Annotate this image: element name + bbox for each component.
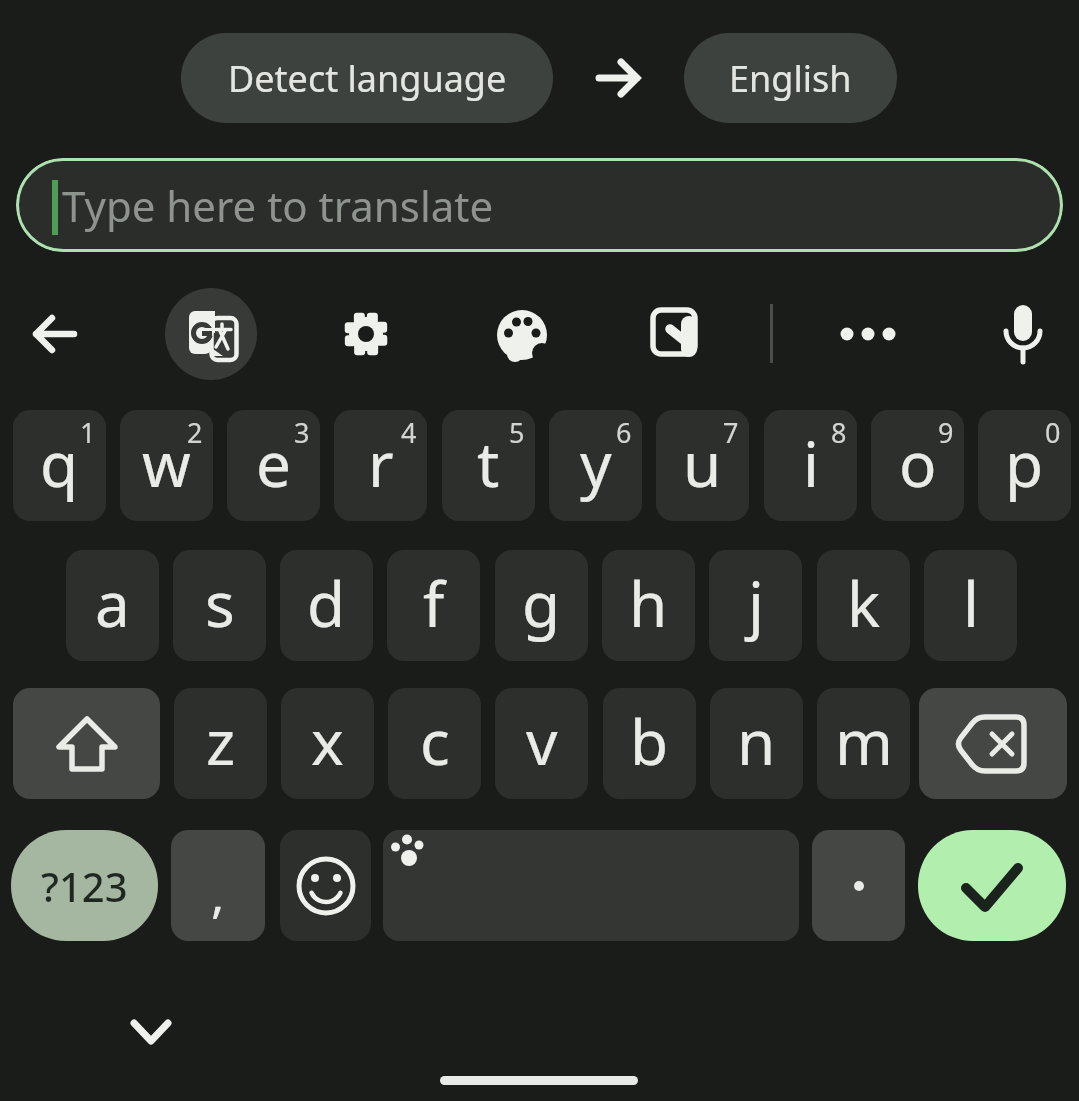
- staticText: Type here to translate: [62, 177, 494, 234]
- button[interactable]: m: [817, 688, 910, 799]
- button[interactable]: ?123: [11, 830, 158, 941]
- button[interactable]: i: [764, 410, 857, 521]
- button[interactable]: [280, 830, 371, 941]
- staticText: y: [580, 421, 612, 505]
- button[interactable]: [836, 321, 900, 347]
- staticText: ,: [211, 860, 225, 928]
- staticText: i: [803, 421, 819, 505]
- button[interactable]: l: [924, 550, 1017, 661]
- button[interactable]: s: [173, 550, 266, 661]
- button[interactable]: [919, 688, 1067, 799]
- staticText: g: [522, 561, 561, 645]
- button[interactable]: [130, 1012, 172, 1054]
- button[interactable]: j: [709, 550, 802, 661]
- staticText: f: [423, 561, 445, 645]
- staticText: o: [899, 421, 937, 505]
- staticText: h: [629, 561, 668, 645]
- button[interactable]: z: [174, 688, 267, 799]
- button[interactable]: [342, 310, 390, 358]
- staticText: w: [142, 421, 191, 505]
- button[interactable]: c: [388, 688, 481, 799]
- staticText: a: [95, 561, 130, 645]
- button[interactable]: u: [656, 410, 749, 521]
- button[interactable]: q: [13, 410, 106, 521]
- staticText: l: [963, 561, 979, 645]
- staticText: 0: [1045, 414, 1061, 451]
- button[interactable]: e: [227, 410, 320, 521]
- staticText: 2: [187, 414, 203, 451]
- staticText: x: [311, 699, 344, 783]
- button[interactable]: [165, 288, 257, 380]
- staticText: English: [729, 54, 852, 103]
- button[interactable]: [997, 300, 1049, 368]
- staticText: q: [40, 421, 79, 505]
- button[interactable]: r: [334, 410, 427, 521]
- staticText: n: [737, 699, 776, 783]
- staticText: 3: [294, 414, 310, 451]
- button[interactable]: n: [710, 688, 803, 799]
- button[interactable]: a: [66, 550, 159, 661]
- staticText: c: [420, 699, 450, 783]
- staticText: 6: [616, 414, 632, 451]
- staticText: k: [847, 561, 881, 645]
- staticText: b: [630, 699, 669, 783]
- button[interactable]: d: [280, 550, 373, 661]
- staticText: 9: [938, 414, 954, 451]
- button[interactable]: [32, 311, 78, 357]
- button[interactable]: Type here to translate: [16, 158, 1063, 252]
- button[interactable]: f: [387, 550, 480, 661]
- button[interactable]: h: [602, 550, 695, 661]
- staticText: Detect language: [228, 54, 507, 103]
- staticText: p: [1005, 421, 1044, 505]
- button[interactable]: [595, 55, 641, 101]
- button[interactable]: Detect language: [181, 33, 553, 123]
- button[interactable]: [812, 830, 905, 941]
- button[interactable]: y: [549, 410, 642, 521]
- staticText: s: [205, 561, 235, 645]
- button[interactable]: [383, 830, 799, 941]
- button[interactable]: p: [978, 410, 1071, 521]
- button[interactable]: b: [603, 688, 696, 799]
- staticText: u: [683, 421, 722, 505]
- staticText: 8: [831, 414, 847, 451]
- button[interactable]: w: [120, 410, 213, 521]
- staticText: 7: [723, 414, 739, 451]
- staticText: 1: [80, 414, 96, 451]
- button[interactable]: t: [442, 410, 535, 521]
- staticText: j: [748, 561, 764, 645]
- button[interactable]: [495, 308, 549, 362]
- button[interactable]: [652, 310, 704, 362]
- button[interactable]: g: [495, 550, 588, 661]
- staticText: d: [307, 561, 346, 645]
- staticText: v: [526, 699, 558, 783]
- button[interactable]: x: [281, 688, 374, 799]
- staticText: t: [477, 421, 500, 505]
- button[interactable]: o: [871, 410, 964, 521]
- staticText: r: [368, 421, 394, 505]
- button[interactable]: English: [684, 33, 897, 123]
- staticText: 4: [401, 414, 417, 451]
- staticText: m: [835, 699, 893, 783]
- button[interactable]: k: [817, 550, 910, 661]
- button[interactable]: ,: [171, 830, 265, 941]
- button[interactable]: [13, 688, 160, 799]
- staticText: ?123: [41, 859, 128, 913]
- button[interactable]: [918, 830, 1066, 941]
- button[interactable]: v: [495, 688, 588, 799]
- staticText: e: [256, 421, 291, 505]
- staticText: z: [206, 699, 236, 783]
- staticText: 5: [509, 414, 525, 451]
